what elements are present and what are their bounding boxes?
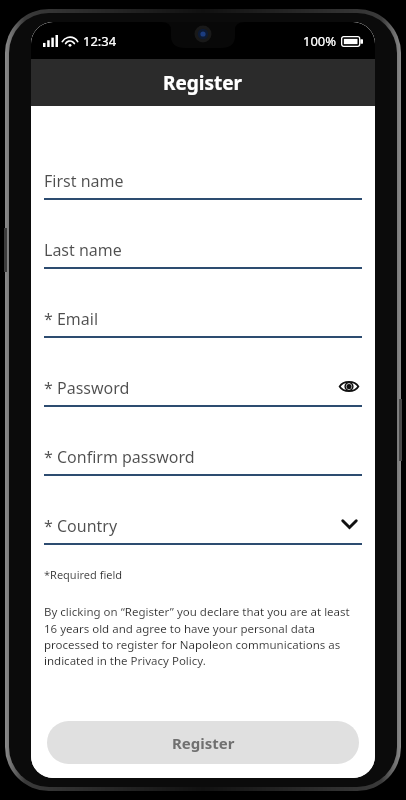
staticText: *Required field bbox=[44, 567, 123, 582]
button[interactable]: * Email bbox=[44, 269, 362, 338]
button[interactable]: Last name bbox=[44, 200, 362, 269]
staticText: * Email bbox=[44, 308, 362, 330]
staticText: By clicking on “Register” you declare th… bbox=[44, 604, 362, 668]
staticText: Last name bbox=[44, 239, 362, 261]
staticText: Register bbox=[172, 733, 235, 753]
button[interactable]: * Country bbox=[44, 476, 362, 545]
staticText: * Confirm password bbox=[44, 446, 362, 468]
button[interactable]: Register bbox=[47, 721, 359, 764]
staticText: 12:34 bbox=[83, 32, 117, 50]
staticText: First name bbox=[44, 170, 362, 192]
button[interactable]: Select country bbox=[336, 511, 362, 537]
staticText: 100% bbox=[303, 32, 337, 50]
button[interactable]: Show password bbox=[336, 373, 362, 399]
button[interactable]: First name bbox=[44, 131, 362, 200]
staticText: Register bbox=[163, 70, 243, 96]
staticText: * Country bbox=[44, 515, 336, 537]
button[interactable]: * Confirm password bbox=[44, 407, 362, 476]
button[interactable]: * Password bbox=[44, 338, 362, 407]
staticText: * Password bbox=[44, 377, 336, 399]
